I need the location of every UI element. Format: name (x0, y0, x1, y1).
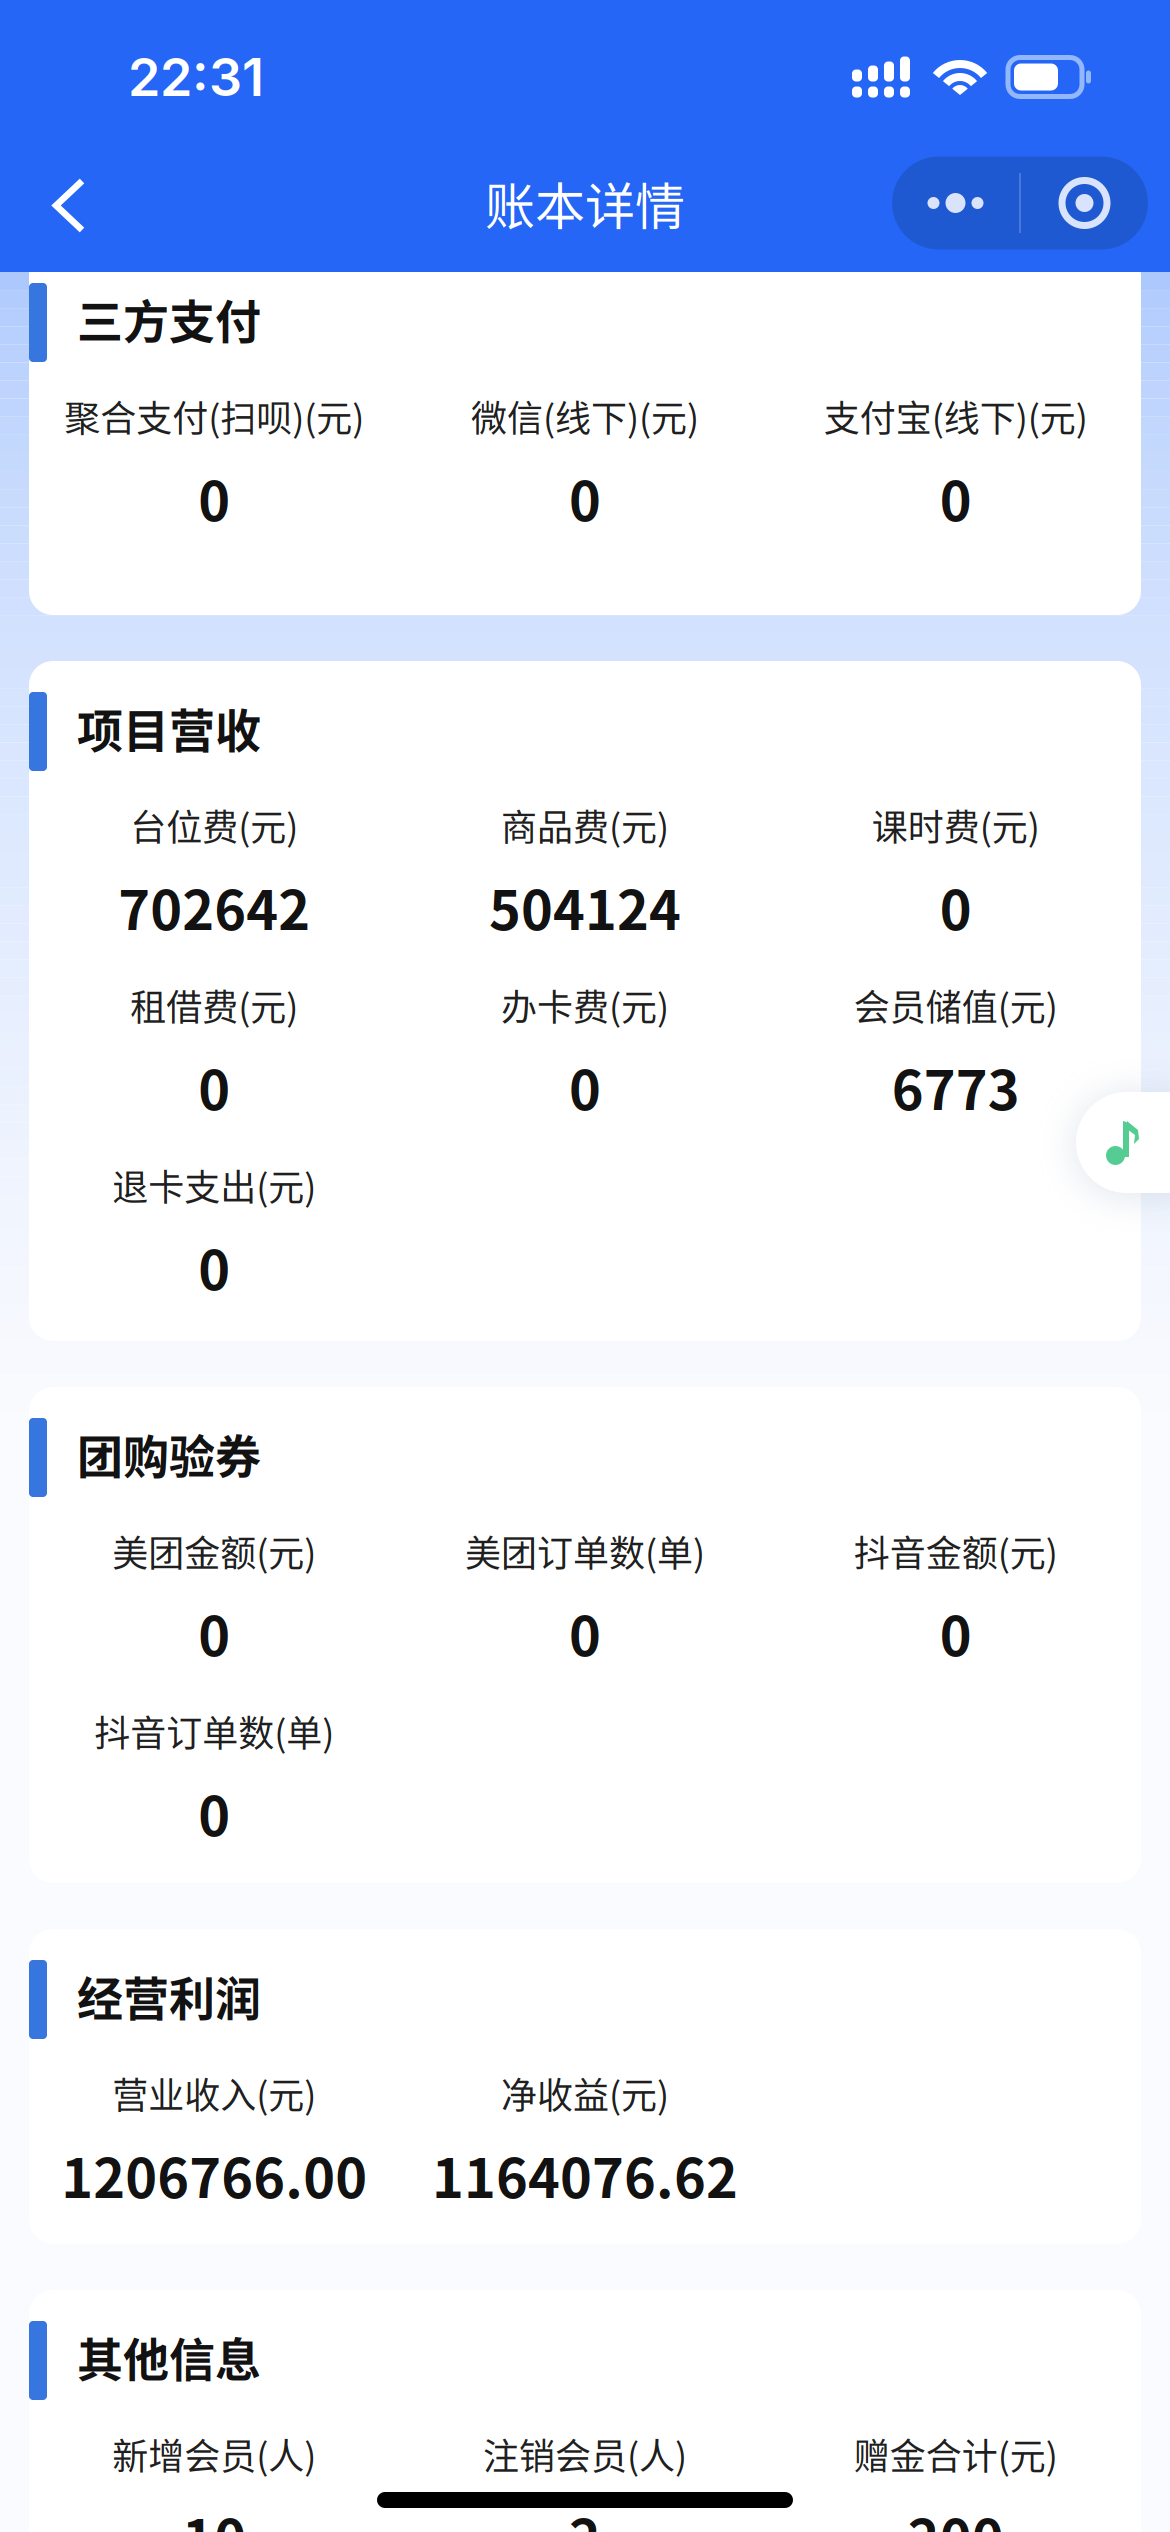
staticText: 净收益(元) (501, 2067, 669, 2119)
staticText: 经营利润 (77, 1962, 261, 2029)
staticText: 0 (569, 458, 601, 537)
staticText: 美团订单数(单) (465, 1525, 705, 1577)
staticText: 1164076.62 (432, 2135, 738, 2214)
staticText: 其他信息 (77, 2323, 261, 2390)
staticText: 1206766.00 (61, 2135, 367, 2214)
staticText: 抖音订单数(单) (94, 1705, 334, 1757)
staticText: 702642 (118, 867, 310, 946)
staticText: 会员储值(元) (854, 979, 1058, 1031)
staticText: 支付宝(线下)(元) (824, 390, 1088, 442)
staticText: 租借费(元) (130, 979, 298, 1031)
staticText: 营业收入(元) (112, 2067, 316, 2119)
staticText: 0 (198, 1593, 230, 1672)
button[interactable]: More (892, 156, 1019, 249)
staticText: 0 (198, 1047, 230, 1126)
staticText: 抖音金额(元) (854, 1525, 1058, 1577)
button[interactable]: Back (0, 156, 122, 250)
staticText: 台位费(元) (130, 799, 298, 851)
staticText: 聚合支付(扫呗)(元) (64, 390, 364, 442)
staticText: 2 (569, 2496, 601, 2532)
staticText: 0 (198, 1227, 230, 1306)
staticText: 0 (940, 1593, 972, 1672)
staticText: 新增会员(人) (112, 2428, 316, 2480)
staticText: 美团金额(元) (112, 1525, 316, 1577)
button[interactable]: Music (1076, 1092, 1170, 1193)
staticText: 微信(线下)(元) (471, 390, 699, 442)
staticText: 课时费(元) (872, 799, 1040, 851)
staticText: 0 (198, 1773, 230, 1852)
staticText: 三方支付 (77, 285, 261, 352)
staticText: 0 (569, 1047, 601, 1126)
staticText: 办卡费(元) (501, 979, 669, 1031)
staticText: 0 (198, 458, 230, 537)
staticText: 0 (940, 867, 972, 946)
staticText: 商品费(元) (501, 799, 669, 851)
staticText: 注销会员(人) (483, 2428, 687, 2480)
staticText: 0 (569, 1593, 601, 1672)
staticText: 200 (908, 2496, 1004, 2532)
staticText: 退卡支出(元) (112, 1159, 316, 1211)
staticText: 6773 (892, 1047, 1020, 1126)
button[interactable]: Close mini program (1021, 156, 1148, 249)
staticText: 项目营收 (77, 694, 261, 761)
staticText: 504124 (489, 867, 681, 946)
staticText: 账本详情 (485, 167, 685, 239)
staticText: 团购验券 (77, 1420, 261, 1487)
staticText: 22:31 (128, 45, 264, 108)
staticText: 10 (182, 2496, 246, 2532)
staticText: 赠金合计(元) (854, 2428, 1058, 2480)
staticText: 0 (940, 458, 972, 537)
